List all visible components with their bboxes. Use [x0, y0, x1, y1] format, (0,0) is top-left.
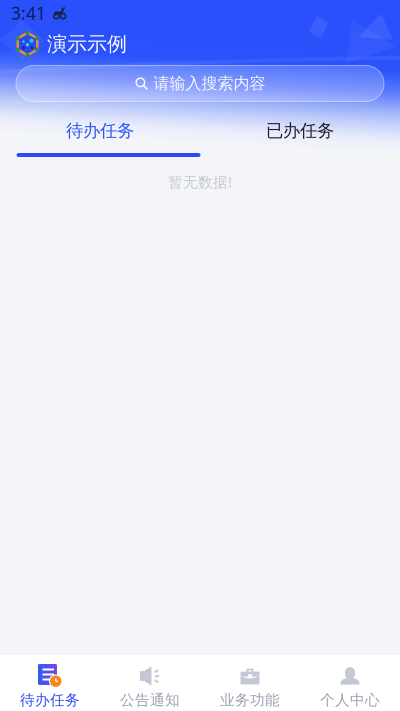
- button[interactable]: 待办任务: [0, 655, 100, 711]
- staticText: 请输入搜索内容: [153, 74, 265, 93]
- staticText: 业务功能: [220, 691, 280, 709]
- button[interactable]: 已办任务: [200, 105, 400, 160]
- button[interactable]: 个人中心: [300, 655, 400, 711]
- staticText: 演示示例: [47, 32, 127, 56]
- button[interactable]: 请输入搜索内容: [16, 65, 384, 101]
- button[interactable]: 待办任务: [0, 105, 200, 160]
- staticText: 个人中心: [320, 691, 380, 709]
- staticText: 已办任务: [266, 120, 334, 141]
- staticText: 待办任务: [20, 691, 80, 709]
- button[interactable]: 公告通知: [100, 655, 200, 711]
- button[interactable]: 业务功能: [200, 655, 300, 711]
- staticText: 待办任务: [66, 120, 134, 141]
- staticText: 公告通知: [120, 691, 180, 709]
- staticText: 3:41: [11, 1, 46, 24]
- staticText: 暂无数据!: [168, 172, 232, 191]
